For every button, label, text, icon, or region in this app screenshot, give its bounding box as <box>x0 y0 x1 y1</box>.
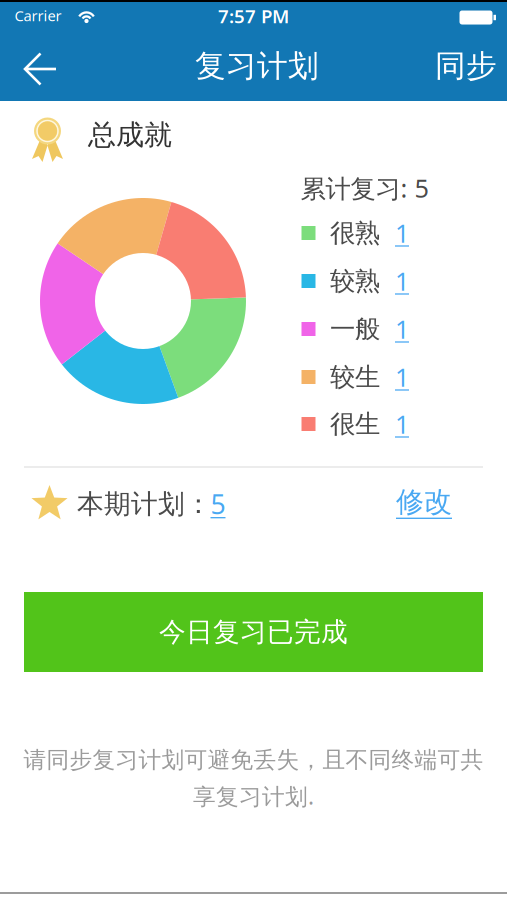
staticText: 累计复习: 5 <box>300 171 428 205</box>
button[interactable]: Back <box>20 47 64 91</box>
staticText: 一般 <box>330 313 380 344</box>
staticText: 今日复习已完成 <box>159 616 348 648</box>
staticText: 1 <box>395 360 409 394</box>
button[interactable]: 1 <box>395 360 409 394</box>
staticText: 享复习计划. <box>193 781 314 811</box>
button[interactable]: 1 <box>395 216 409 250</box>
staticText: 1 <box>395 312 409 346</box>
button[interactable]: 今日复习已完成 <box>24 592 483 672</box>
staticText: 很熟 <box>330 217 380 248</box>
button[interactable]: 1 <box>395 264 409 298</box>
button[interactable]: 同步 <box>435 47 497 85</box>
staticText: 请同步复习计划可避免丢失，且不同终端可共 <box>23 746 483 774</box>
staticText: 较熟 <box>330 265 380 296</box>
button[interactable]: 5 <box>210 486 225 522</box>
staticText: 7:57 PM <box>218 4 289 28</box>
staticText: 1 <box>395 407 409 441</box>
staticText: 同步 <box>435 47 497 85</box>
staticText: 1 <box>395 216 409 250</box>
staticText: 1 <box>395 264 409 298</box>
staticText: 总成就 <box>88 118 172 152</box>
staticText: Carrier <box>14 6 61 25</box>
button[interactable]: 1 <box>395 407 409 441</box>
staticText: 本期计划： <box>77 488 212 520</box>
staticText: 很生 <box>330 408 380 439</box>
button[interactable]: 修改 <box>396 485 452 519</box>
button[interactable]: 1 <box>395 312 409 346</box>
staticText: 较生 <box>330 361 380 392</box>
staticText: 复习计划 <box>195 47 319 85</box>
staticText: 修改 <box>396 485 452 519</box>
staticText: 5 <box>210 486 225 522</box>
